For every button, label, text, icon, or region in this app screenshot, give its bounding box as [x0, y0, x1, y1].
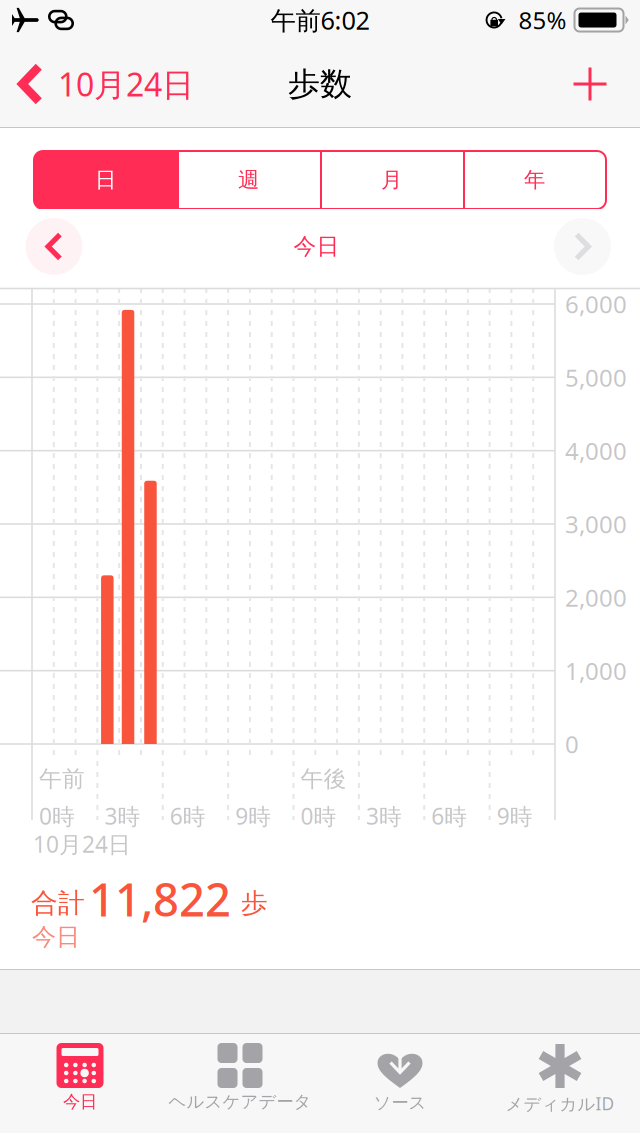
staticText: 3時 [104, 801, 140, 831]
button[interactable]: 日 [34, 151, 177, 209]
button[interactable]: ソース [320, 1033, 480, 1133]
staticText: メディカルID [505, 1092, 614, 1115]
staticText: 合計 [31, 887, 85, 919]
button[interactable]: 前の日 [0, 209, 108, 284]
staticText: 2,000 [565, 581, 627, 613]
staticText: 10月24日 [33, 829, 131, 859]
button[interactable]: ヘルスケアデータ [160, 1033, 320, 1133]
staticText: 月 [381, 167, 402, 193]
staticText: 0 [565, 728, 579, 760]
staticText: 今日 [32, 922, 80, 952]
button[interactable]: 次の日 [525, 209, 640, 284]
staticText: 0時 [39, 801, 75, 831]
staticText: 年 [524, 167, 545, 193]
staticText: 3,000 [565, 508, 627, 540]
staticText: 9時 [497, 801, 533, 831]
staticText: 午前6:02 [270, 3, 369, 37]
staticText: 週 [238, 167, 259, 193]
staticText: 0時 [300, 801, 336, 831]
button[interactable]: 今日 [0, 1033, 160, 1133]
staticText: 午前 [39, 765, 85, 793]
staticText: 85% [518, 4, 566, 36]
staticText: 今日 [293, 233, 339, 260]
staticText: 午後 [300, 765, 346, 793]
staticText: 4,000 [565, 435, 627, 467]
button[interactable]: メディカルID [480, 1033, 640, 1133]
staticText: 6時 [170, 801, 206, 831]
staticText: 11,822 [89, 869, 231, 929]
staticText: 10月24日 [58, 63, 194, 105]
staticText: ソース [373, 1092, 426, 1113]
staticText: ヘルスケアデータ [168, 1091, 311, 1112]
staticText: 9時 [235, 801, 271, 831]
staticText: 6時 [431, 801, 467, 831]
button[interactable]: 追加 [556, 40, 640, 128]
button[interactable]: 年 [463, 151, 606, 209]
staticText: 歩 [241, 887, 268, 919]
button[interactable]: 10月24日 [0, 40, 204, 128]
button[interactable]: 月 [320, 151, 463, 209]
staticText: 6,000 [565, 288, 627, 320]
staticText: 3時 [366, 801, 402, 831]
staticText: 日 [95, 167, 116, 193]
staticText: 歩数 [288, 64, 352, 104]
button[interactable]: 週 [177, 151, 320, 209]
staticText: 5,000 [565, 361, 627, 393]
staticText: 今日 [63, 1091, 97, 1112]
staticText: 1,000 [565, 655, 627, 687]
